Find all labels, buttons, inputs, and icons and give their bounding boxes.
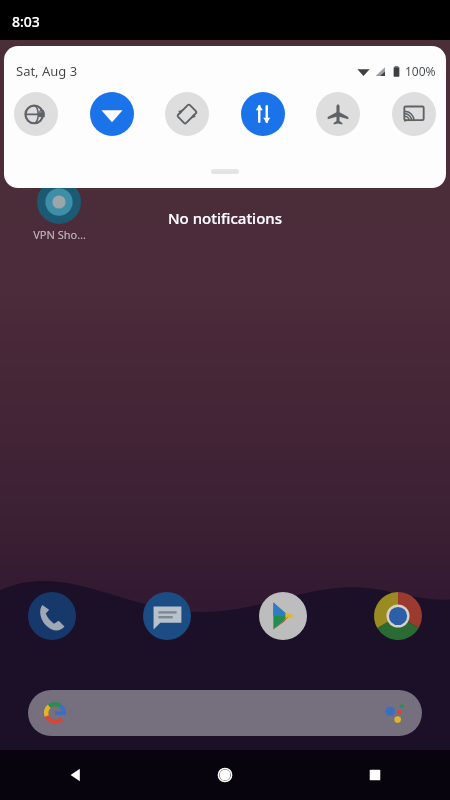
button[interactable]: Cast bbox=[392, 92, 436, 136]
button[interactable]: Messages bbox=[141, 590, 193, 642]
staticText: 8:03 bbox=[12, 12, 40, 31]
button[interactable]: Play Store bbox=[257, 590, 309, 642]
button[interactable]: Chrome bbox=[372, 590, 424, 642]
button[interactable] bbox=[28, 690, 422, 736]
button[interactable]: Expand quick settings bbox=[211, 169, 239, 174]
button[interactable]: Recents bbox=[300, 750, 450, 800]
staticText: 100% bbox=[405, 63, 436, 79]
button[interactable]: Wi-Fi bbox=[90, 92, 134, 136]
button[interactable]: Auto rotate bbox=[165, 92, 209, 136]
staticText: VPN Sho… bbox=[33, 227, 86, 242]
button[interactable]: VPN bbox=[14, 92, 58, 136]
button[interactable]: Mobile data bbox=[241, 92, 285, 136]
button[interactable]: VPN Sho… bbox=[28, 180, 90, 242]
button[interactable]: Home bbox=[150, 750, 300, 800]
button[interactable]: Airplane mode bbox=[316, 92, 360, 136]
button[interactable]: Back bbox=[0, 750, 150, 800]
staticText: Sat, Aug 3 bbox=[16, 62, 78, 80]
staticText: No notifications bbox=[0, 208, 450, 228]
button[interactable]: Phone bbox=[26, 590, 78, 642]
